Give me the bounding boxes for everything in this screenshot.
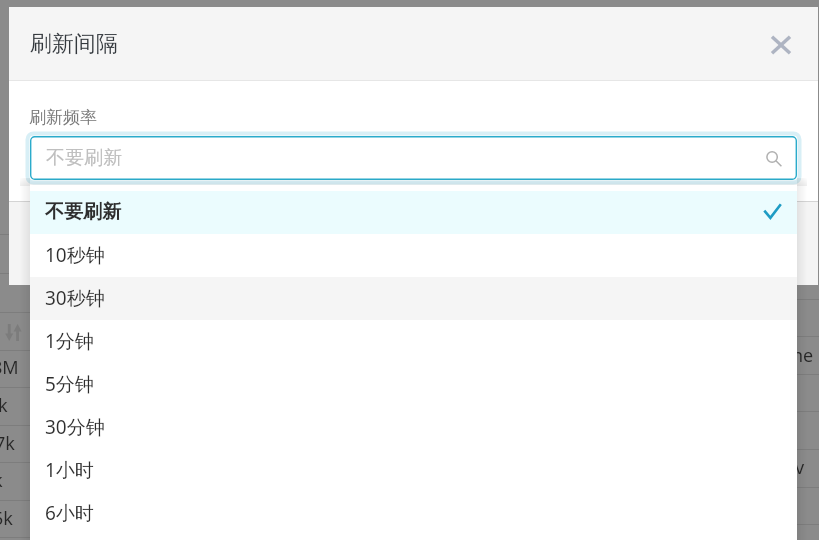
staticText: 刷新间隔 — [30, 30, 118, 58]
staticText: 6小时 — [45, 500, 94, 526]
staticText: 30秒钟 — [45, 285, 105, 311]
staticText: 5分钟 — [45, 371, 94, 397]
staticText: 5k — [0, 506, 13, 531]
staticText: k — [0, 393, 8, 418]
button[interactable]: 30分钟 — [30, 406, 797, 449]
staticText: he — [792, 343, 814, 368]
staticText: 1小时 — [45, 457, 94, 483]
staticText: v — [795, 455, 805, 480]
button[interactable]: 6小时 — [30, 492, 797, 535]
button[interactable]: 1分钟 — [30, 320, 797, 363]
staticText: 30分钟 — [45, 414, 105, 440]
button[interactable]: 10秒钟 — [30, 234, 797, 277]
staticText: k — [0, 468, 3, 493]
button[interactable]: 1小时 — [30, 449, 797, 492]
button[interactable]: Close — [759, 23, 803, 67]
button[interactable]: 不要刷新 — [30, 191, 797, 234]
staticText: 8M — [0, 355, 19, 380]
button[interactable]: 30秒钟 — [30, 277, 797, 320]
staticText: 不要刷新 — [46, 146, 122, 170]
button[interactable]: 5分钟 — [30, 363, 797, 406]
staticText: 刷新频率 — [29, 107, 97, 128]
staticText: 不要刷新 — [45, 200, 121, 224]
staticText: 1分钟 — [45, 328, 94, 354]
staticText: 7k — [0, 431, 15, 456]
staticText: 10秒钟 — [45, 242, 105, 268]
